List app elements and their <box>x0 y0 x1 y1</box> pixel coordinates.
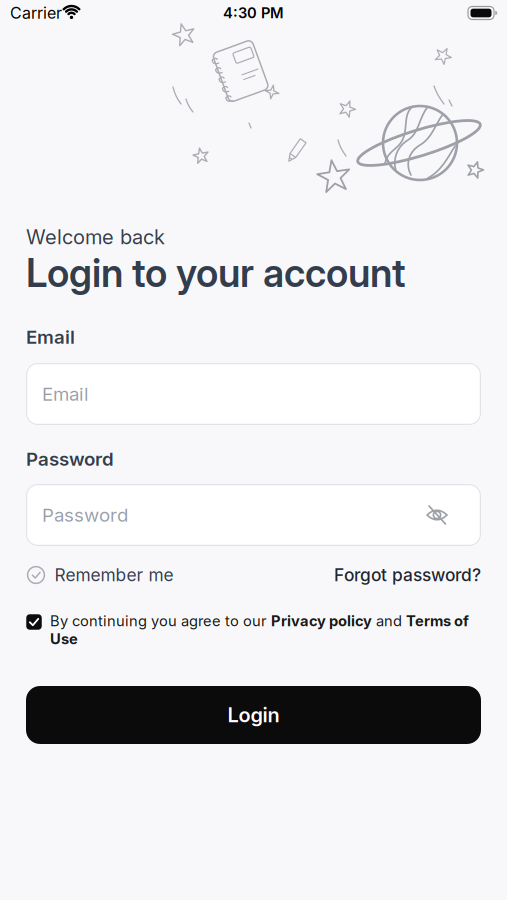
button[interactable]: Forgot password? <box>334 565 481 585</box>
staticText: Email <box>26 326 75 348</box>
button[interactable]: Email <box>26 363 481 425</box>
staticText: Forgot password? <box>334 565 481 585</box>
staticText: Use <box>50 630 78 648</box>
staticText: Password <box>26 448 114 470</box>
button[interactable]: Remember me <box>26 565 173 585</box>
button[interactable]: Login <box>26 686 481 744</box>
staticText: Email <box>42 383 89 405</box>
staticText: Carrier <box>10 4 62 22</box>
button[interactable]: Terms of Use <box>404 612 470 630</box>
staticText: Password <box>42 504 128 526</box>
staticText: Login <box>227 703 279 727</box>
button[interactable]: Agree to terms <box>26 614 42 630</box>
staticText: Login to your account <box>26 250 406 296</box>
staticText: By continuing you agree to our Privacy p… <box>50 612 469 630</box>
staticText: Remember me <box>54 565 173 585</box>
button[interactable]: Show password <box>422 500 452 530</box>
button[interactable]: Privacy policy <box>269 612 373 630</box>
staticText: Welcome back <box>26 225 165 249</box>
staticText: 4:30 PM <box>223 4 284 22</box>
button[interactable]: Password <box>26 484 481 546</box>
